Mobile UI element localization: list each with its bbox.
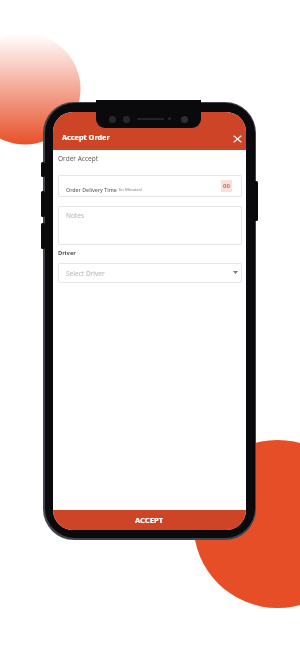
- staticText: Order Accept: [58, 154, 99, 163]
- button[interactable]: Order Delivery Time: [58, 175, 242, 197]
- staticText: 00: [223, 182, 230, 190]
- button[interactable]: Close: [230, 132, 244, 146]
- staticText: Notes: [66, 211, 84, 220]
- button[interactable]: ACCEPT: [53, 510, 246, 530]
- staticText: Driver: [58, 249, 76, 257]
- staticText: Select Driver: [66, 269, 105, 278]
- staticText: Accept Order: [62, 132, 110, 142]
- button[interactable]: Select Driver: [58, 263, 242, 283]
- staticText: Order Delivery Time: [66, 186, 119, 193]
- staticText: ACCEPT: [135, 515, 164, 525]
- button[interactable]: Notes: [58, 206, 242, 245]
- staticText: (in Minutes): [119, 187, 143, 193]
